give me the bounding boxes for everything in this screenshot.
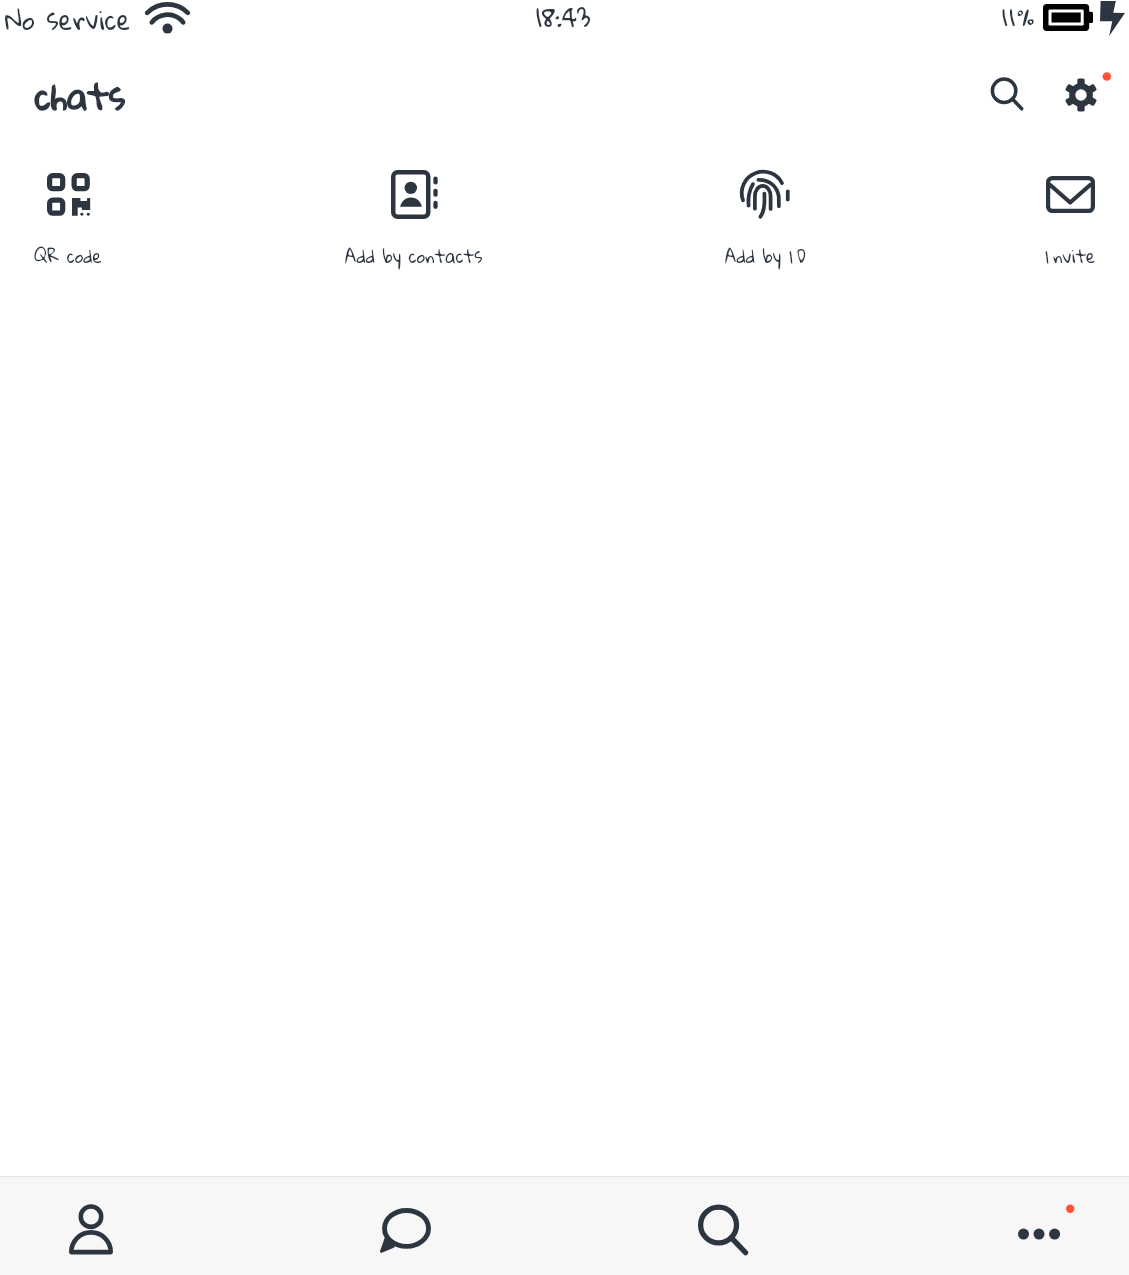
staticText: nvite — [1053, 239, 1096, 273]
button[interactable]: More — [999, 1177, 1079, 1275]
button[interactable]: QR code — [0, 169, 163, 273]
staticText: chats — [35, 62, 126, 129]
staticText: No service — [5, 0, 131, 37]
button[interactable]: Add by — [670, 169, 860, 273]
staticText: l — [789, 239, 793, 273]
button[interactable]: l — [975, 169, 1129, 273]
staticText: 11% — [1002, 0, 1037, 36]
staticText: 18:43 — [536, 0, 591, 35]
button[interactable]: Search — [973, 60, 1041, 128]
button[interactable]: Add by contacts — [319, 169, 509, 273]
staticText: Add by contacts — [345, 239, 483, 273]
staticText: D — [797, 239, 806, 273]
staticText: Add by — [725, 239, 789, 273]
button[interactable]: Settings — [1047, 61, 1115, 129]
staticText: QR code — [34, 239, 102, 273]
staticText: l — [1045, 239, 1049, 273]
button[interactable]: Search — [683, 1177, 763, 1275]
staticText: chats — [35, 62, 126, 129]
button[interactable]: Chats — [366, 1177, 446, 1275]
button[interactable]: Contacts — [51, 1177, 131, 1275]
